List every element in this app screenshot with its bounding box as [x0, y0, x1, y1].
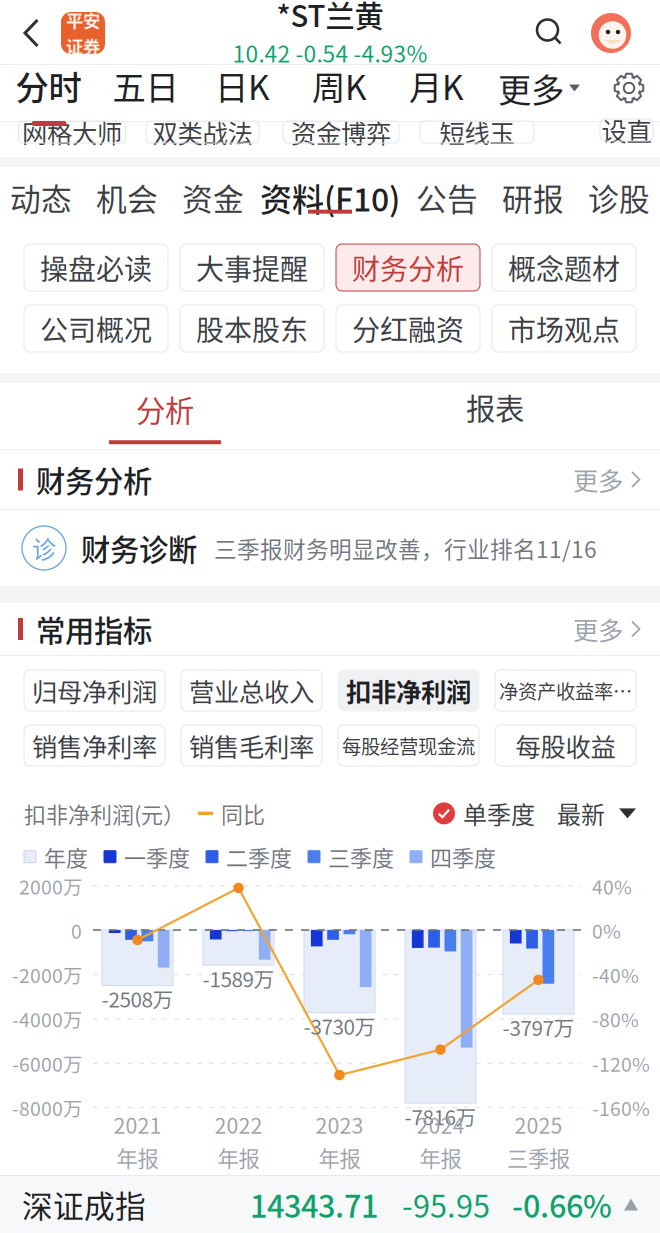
staticText: 月K — [409, 61, 464, 110]
staticText: 深证成指 — [22, 1182, 146, 1227]
button[interactable]: 分析 — [0, 383, 330, 449]
staticText: 年度 — [44, 841, 88, 873]
staticText: 一季度 — [124, 841, 190, 873]
staticText: 营业总收入 — [189, 672, 314, 709]
button[interactable]: 报表 — [330, 374, 660, 458]
button[interactable]: 市场观点 — [492, 305, 636, 352]
staticText: 资金 — [182, 175, 244, 220]
staticText: 分时 — [15, 61, 81, 110]
button[interactable]: 月K — [388, 54, 485, 139]
staticText: 单季度 — [463, 796, 535, 831]
staticText: -40% — [592, 961, 639, 989]
staticText: 分红融资 — [352, 308, 464, 349]
button[interactable]: 机会 — [84, 167, 170, 228]
staticText: 二季度 — [226, 841, 292, 873]
staticText: -95.95 — [402, 1182, 490, 1227]
button[interactable]: 净资产收益率… — [495, 670, 636, 711]
button[interactable]: Back — [6, 1, 56, 65]
staticText: 资金博弈 — [291, 114, 391, 150]
button[interactable]: 网格大师 — [18, 121, 125, 143]
staticText: -160% — [592, 1093, 650, 1121]
staticText: -8000万 — [12, 1093, 82, 1121]
staticText: 0% — [592, 916, 621, 944]
staticText: *ST兰黄 — [276, 0, 383, 35]
staticText: 日K — [215, 61, 270, 110]
staticText: -4000万 — [12, 1005, 82, 1033]
button[interactable]: 财务分析 — [336, 244, 480, 291]
staticText: -3730万 — [303, 1011, 375, 1041]
button[interactable]: 资金博弈 — [283, 121, 399, 143]
button[interactable]: 资金 — [170, 167, 256, 228]
button[interactable]: 设直 — [600, 119, 653, 141]
button[interactable]: 销售净利率 — [24, 725, 165, 766]
button[interactable]: 概念题材 — [492, 244, 636, 291]
staticText: 三季报财务明显改善，行业排名11/16 — [214, 532, 597, 564]
button[interactable]: 操盘必读 — [24, 244, 168, 291]
button[interactable]: 短线玉 — [420, 121, 534, 143]
button[interactable]: Search — [523, 2, 575, 62]
staticText: 归母净利润 — [32, 672, 157, 709]
button[interactable]: 诊股 — [576, 167, 660, 228]
staticText: -6000万 — [12, 1049, 82, 1077]
button[interactable]: 研报 — [490, 167, 576, 228]
staticText: 研报 — [502, 175, 564, 220]
staticText: 机会 — [96, 175, 158, 220]
staticText: 每股收益 — [515, 727, 615, 764]
button[interactable]: 公司概况 — [24, 305, 168, 352]
staticText: 2000万 — [19, 872, 82, 900]
button[interactable]: Settings — [598, 56, 660, 136]
button[interactable]: 股本股东 — [180, 305, 324, 352]
staticText: 大事提醒 — [196, 247, 308, 288]
button[interactable]: 更多 — [573, 461, 642, 498]
staticText: 2025 — [514, 1109, 562, 1140]
button[interactable]: 营业总收入 — [181, 670, 322, 711]
button[interactable]: 分时 — [0, 54, 97, 139]
staticText: 动态 — [10, 175, 72, 220]
button[interactable]: 大事提醒 — [180, 244, 324, 291]
staticText: -0.66% — [512, 1182, 612, 1227]
staticText: 概念题材 — [508, 247, 620, 288]
staticText: 每股经营现金流 — [342, 731, 475, 759]
staticText: 更多 — [498, 64, 564, 112]
staticText: -7816万 — [404, 1101, 476, 1131]
button[interactable]: 更多 — [485, 56, 593, 136]
staticText: -120% — [592, 1049, 650, 1077]
staticText: 网格大师 — [22, 114, 122, 150]
button[interactable]: 销售毛利率 — [181, 725, 322, 766]
button[interactable]: 日K — [194, 54, 291, 139]
staticText: 股本股东 — [196, 308, 308, 349]
staticText: 财务分析 — [36, 458, 152, 501]
staticText: 扣非净利润(元） — [24, 797, 185, 829]
staticText: 证券 — [66, 33, 100, 59]
staticText: -2508万 — [101, 984, 173, 1013]
button[interactable]: 每股经营现金流 — [338, 725, 479, 766]
staticText: 10.42 -0.54 -4.93% — [232, 36, 427, 69]
staticText: 市场观点 — [508, 308, 620, 349]
staticText: 2022 — [214, 1109, 262, 1140]
button[interactable]: 更多 — [573, 611, 642, 647]
button[interactable]: Profile — [585, 3, 637, 63]
button[interactable]: 分红融资 — [336, 305, 480, 352]
staticText: 同比 — [221, 797, 265, 829]
staticText: 年报 — [419, 1142, 461, 1173]
staticText: 资料(F10) — [260, 174, 400, 221]
button[interactable]: 动态 — [0, 167, 84, 228]
button[interactable]: 归母净利润 — [24, 670, 165, 711]
staticText: 扣非净利润 — [346, 672, 471, 709]
button[interactable]: 五日 — [97, 54, 194, 139]
button[interactable]: 资料(F10) — [256, 167, 404, 228]
staticText: 分析 — [136, 388, 194, 430]
button[interactable]: 双类战法 — [146, 121, 259, 143]
button[interactable]: 扣非净利润 — [338, 670, 479, 711]
button[interactable]: 最新 — [535, 796, 636, 831]
staticText: 五日 — [112, 61, 178, 110]
staticText: 销售毛利率 — [189, 727, 314, 764]
button[interactable]: 周K — [291, 54, 388, 139]
button[interactable]: 诊 — [0, 510, 660, 586]
staticText: 2024 — [416, 1109, 464, 1140]
button[interactable]: 每股收益 — [495, 725, 636, 766]
staticText: 最新 — [557, 796, 605, 831]
button[interactable]: 公告 — [404, 167, 490, 228]
staticText: 0 — [71, 916, 82, 944]
staticText: 公告 — [416, 175, 478, 220]
